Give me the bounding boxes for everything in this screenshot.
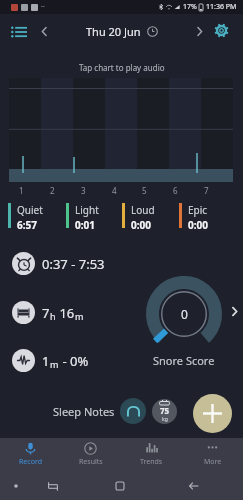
button[interactable]: Mouthguard [120,398,146,424]
button[interactable]: Switch apps [45,478,61,494]
staticText: Light [75,203,99,217]
staticText: 0 [181,306,188,322]
staticText: Thu 20 Jun [86,24,141,39]
button[interactable]: More details [227,304,242,319]
button[interactable]: Assistant [8,478,24,494]
button[interactable]: Quiet [8,203,60,232]
staticText: 75 [160,405,170,416]
staticText: 2 [50,185,55,196]
staticText: 7 [42,304,50,322]
staticText: 6 [173,185,178,196]
staticText: Trends [140,457,163,467]
button[interactable]: More [182,438,243,470]
staticText: More [204,457,222,467]
staticText: 0:01 [75,218,95,232]
button[interactable]: Epic [179,203,231,232]
staticText: 16 [56,304,75,322]
button[interactable]: Previous day [34,21,54,41]
staticText: 1 [19,185,24,196]
button[interactable]: Thu 20 Jun [86,22,158,40]
button[interactable]: Menu [7,21,31,41]
button[interactable]: 7 [12,301,122,324]
button[interactable]: Settings [210,19,233,42]
staticText: Tap chart to play audio [79,62,165,73]
staticText: m [50,358,59,370]
staticText: 6:57 [17,218,37,232]
staticText: Snore Score [153,353,215,368]
staticText: 17% [183,2,197,12]
staticText: 3 [81,185,86,196]
button[interactable]: Next day [189,21,209,41]
button[interactable]: Back [186,478,202,494]
staticText: 0:37 - 7:53 [42,255,105,273]
staticText: m [75,310,84,322]
button[interactable]: Results [60,438,121,470]
button[interactable]: Weight 75 kilograms [152,399,177,424]
button[interactable]: Sleep Notes [53,401,115,421]
button[interactable]: 1 [12,349,122,372]
staticText: h [50,310,56,322]
staticText: 0:00 [131,218,151,232]
staticText: 7 [204,185,209,196]
button[interactable]: 0:37 - 7:53 [12,252,122,275]
staticText: Results [79,457,103,467]
staticText: Epic [188,203,208,217]
staticText: Sleep Notes [53,404,115,419]
staticText: ·· [41,2,45,12]
button[interactable]: Snore Score [146,276,222,368]
staticText: kg [162,416,168,423]
staticText: 0:00 [188,218,208,232]
button[interactable]: Loud [122,203,174,232]
staticText: Loud [131,203,155,217]
button[interactable]: Sound chart [0,78,243,182]
button[interactable]: Record [0,438,60,470]
staticText: 5 [142,185,147,196]
staticText: 4 [112,185,117,196]
staticText: - 0% [59,352,89,370]
button[interactable]: Trends [121,438,182,470]
staticText: 1 [42,352,50,370]
staticText: Quiet [17,203,43,217]
staticText: 11:36 PM [206,2,237,12]
button[interactable]: Add [193,394,232,433]
staticText: Record [19,457,42,467]
button[interactable]: Light [66,203,118,232]
button[interactable]: Recent apps [112,478,128,494]
